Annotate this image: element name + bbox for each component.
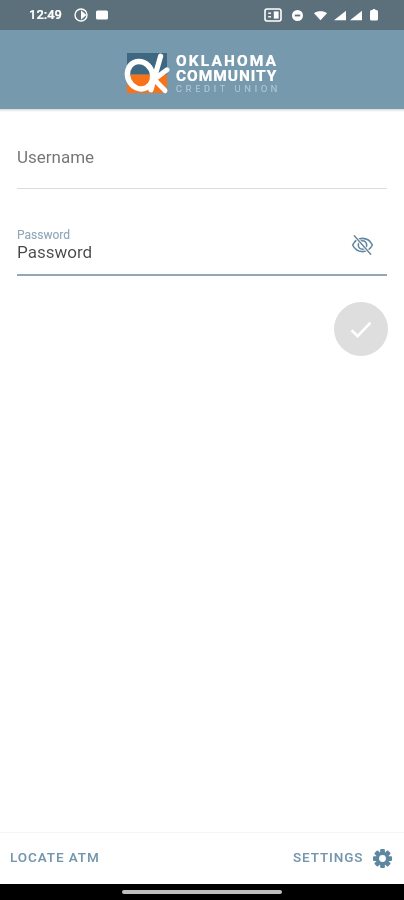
staticText: OKLAHOMA xyxy=(176,52,279,70)
staticText: Password xyxy=(17,228,71,242)
button[interactable]: LOCATE ATM xyxy=(4,839,106,875)
staticText: LOCATE ATM xyxy=(10,849,100,865)
staticText: Password xyxy=(17,242,93,262)
staticText: 12:49 xyxy=(29,7,63,22)
staticText: SETTINGS xyxy=(293,849,364,865)
button[interactable]: Username xyxy=(0,128,404,190)
staticText: CREDIT UNION xyxy=(176,84,282,95)
button[interactable]: Toggle password visibility xyxy=(348,231,376,259)
staticText: Username xyxy=(17,147,95,167)
button[interactable]: Password xyxy=(0,218,404,277)
button[interactable]: SETTINGS xyxy=(287,839,398,874)
staticText: COMMUNITY xyxy=(176,67,278,85)
button[interactable]: Sign in xyxy=(334,302,388,356)
